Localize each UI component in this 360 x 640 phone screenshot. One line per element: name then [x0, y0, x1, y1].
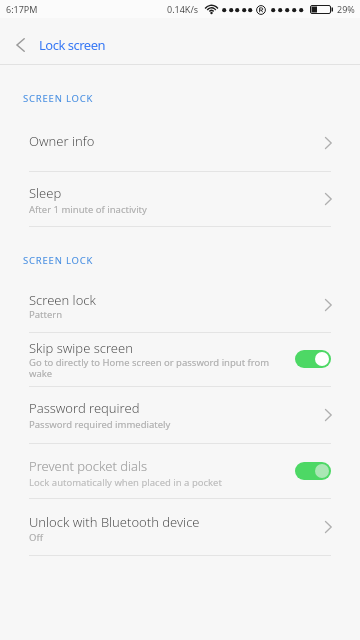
- staticText: 0.14K/s: [167, 3, 199, 15]
- staticText: wake: [29, 367, 53, 380]
- staticText: Sleep: [29, 184, 62, 202]
- button[interactable]: Lock screen: [0, 18, 360, 64]
- staticText: SCREEN LOCK: [23, 92, 94, 105]
- button[interactable]: Screen lock: [0, 277, 360, 332]
- staticText: Password required: [29, 399, 140, 417]
- button[interactable]: Unlock with Bluetooth device: [0, 498, 360, 556]
- staticText: Lock screen: [39, 36, 106, 54]
- staticText: Password required immediately: [29, 418, 171, 431]
- staticText: SCREEN LOCK: [23, 254, 94, 267]
- staticText: Skip swipe screen: [29, 339, 133, 357]
- staticText: Off: [29, 531, 43, 544]
- button[interactable]: Sleep: [0, 171, 360, 226]
- staticText: Unlock with Bluetooth device: [29, 513, 200, 531]
- staticText: Lock automatically when placed in a pock…: [29, 476, 222, 489]
- staticText: Screen lock: [29, 291, 96, 309]
- button[interactable]: Skip swipe screen: [0, 332, 360, 386]
- staticText: Owner info: [29, 132, 95, 150]
- staticText: Go to directly to Home screen or passwor…: [29, 356, 270, 369]
- staticText: Pattern: [29, 308, 63, 321]
- button[interactable]: Prevent pocket dials: [0, 443, 360, 498]
- button[interactable]: Password required: [0, 386, 360, 443]
- staticText: Prevent pocket dials: [29, 457, 148, 475]
- staticText: 6:17PM: [6, 3, 38, 15]
- button[interactable]: Owner info: [0, 115, 360, 171]
- staticText: After 1 minute of inactivity: [29, 203, 147, 216]
- staticText: 29%: [337, 3, 355, 15]
